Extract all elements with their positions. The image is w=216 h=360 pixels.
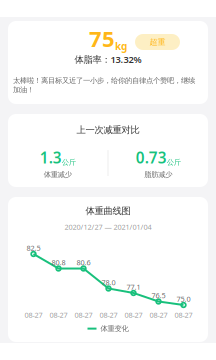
- staticText: 2020/12/27 — 2021/01/04: [64, 222, 151, 232]
- staticText: 08-27: [24, 310, 42, 320]
- staticText: 超重: [149, 37, 165, 47]
- staticText: 08-27: [74, 310, 92, 320]
- staticText: 08-27: [124, 310, 142, 320]
- staticText: 08-27: [49, 310, 67, 320]
- staticText: 体重曲线图: [85, 205, 130, 217]
- staticText: 75: [89, 23, 115, 53]
- staticText: 太棒啦！离目标又近了一小步，给你的自律点个赞吧，继续: [13, 76, 195, 85]
- staticText: 75.0: [176, 294, 190, 304]
- staticText: 体脂率：13.32%: [74, 53, 141, 66]
- staticText: 08-27: [149, 310, 167, 320]
- staticText: 脂肪减少: [144, 170, 172, 179]
- staticText: 82.5: [26, 243, 40, 253]
- staticText: 80.8: [51, 257, 65, 267]
- button[interactable]: 超重: [135, 34, 180, 50]
- staticText: 上一次减重对比: [76, 124, 139, 136]
- staticText: 加油！: [13, 85, 34, 94]
- staticText: 0.73: [136, 147, 167, 168]
- staticText: 体重减少: [44, 170, 72, 179]
- staticText: 08-27: [99, 310, 117, 320]
- staticText: kg: [115, 39, 127, 53]
- staticText: 78.0: [101, 277, 115, 287]
- staticText: 77.1: [126, 282, 140, 292]
- staticText: 80.6: [76, 257, 90, 267]
- staticText: 公斤: [167, 158, 181, 167]
- staticText: 1.3: [40, 147, 62, 168]
- staticText: 公斤: [62, 158, 76, 167]
- staticText: 体重变化: [100, 324, 128, 333]
- staticText: 08-27: [174, 310, 192, 320]
- staticText: 76.5: [151, 290, 165, 300]
